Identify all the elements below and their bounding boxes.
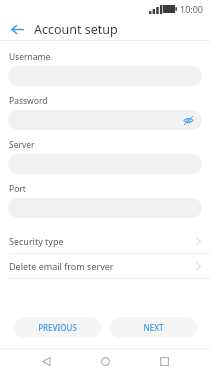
staticText: NEXT (143, 322, 164, 333)
button[interactable]: Back (33, 349, 59, 373)
button[interactable]: Recent apps (151, 349, 177, 373)
staticText: Delete email from server (9, 260, 196, 272)
button[interactable]: NEXT (109, 317, 197, 338)
staticText: Security type (9, 235, 196, 247)
staticText: Username (9, 51, 51, 63)
staticText: 10:00 (180, 3, 204, 15)
button[interactable]: Show password (8, 110, 202, 130)
button[interactable]: Show password (181, 113, 195, 127)
staticText: PREVIOUS (38, 322, 77, 333)
staticText: Server (9, 139, 35, 151)
button[interactable]: Delete email from server (0, 254, 210, 278)
staticText: Port (9, 183, 26, 195)
staticText: Account setup (34, 21, 118, 38)
button[interactable]: PREVIOUS (13, 317, 101, 338)
staticText: Password (9, 95, 48, 107)
button[interactable]: Security type (0, 229, 210, 253)
button[interactable]: Home (92, 349, 118, 373)
button[interactable]: Back (7, 19, 27, 39)
